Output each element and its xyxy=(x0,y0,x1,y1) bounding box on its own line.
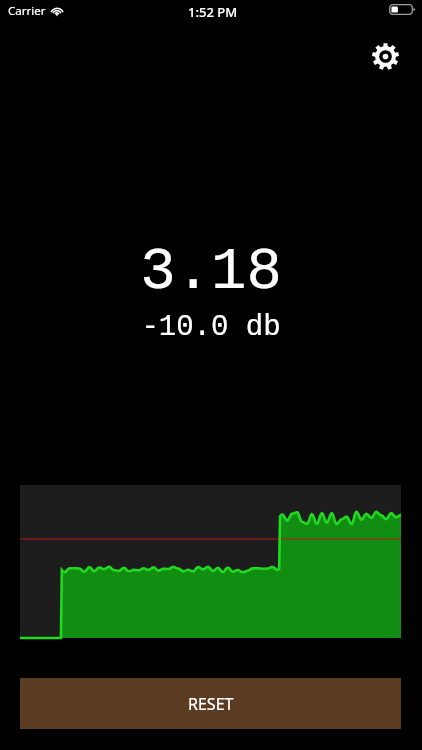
staticText: -10.0 db xyxy=(0,311,422,344)
staticText: RESET xyxy=(188,693,234,715)
staticText: 1:52 PM xyxy=(188,3,238,21)
button[interactable]: Settings xyxy=(372,43,399,70)
button[interactable]: Level history graph xyxy=(20,485,401,638)
staticText: Carrier xyxy=(8,3,46,19)
button[interactable]: RESET xyxy=(20,678,401,729)
staticText: 3.18 xyxy=(0,239,422,306)
